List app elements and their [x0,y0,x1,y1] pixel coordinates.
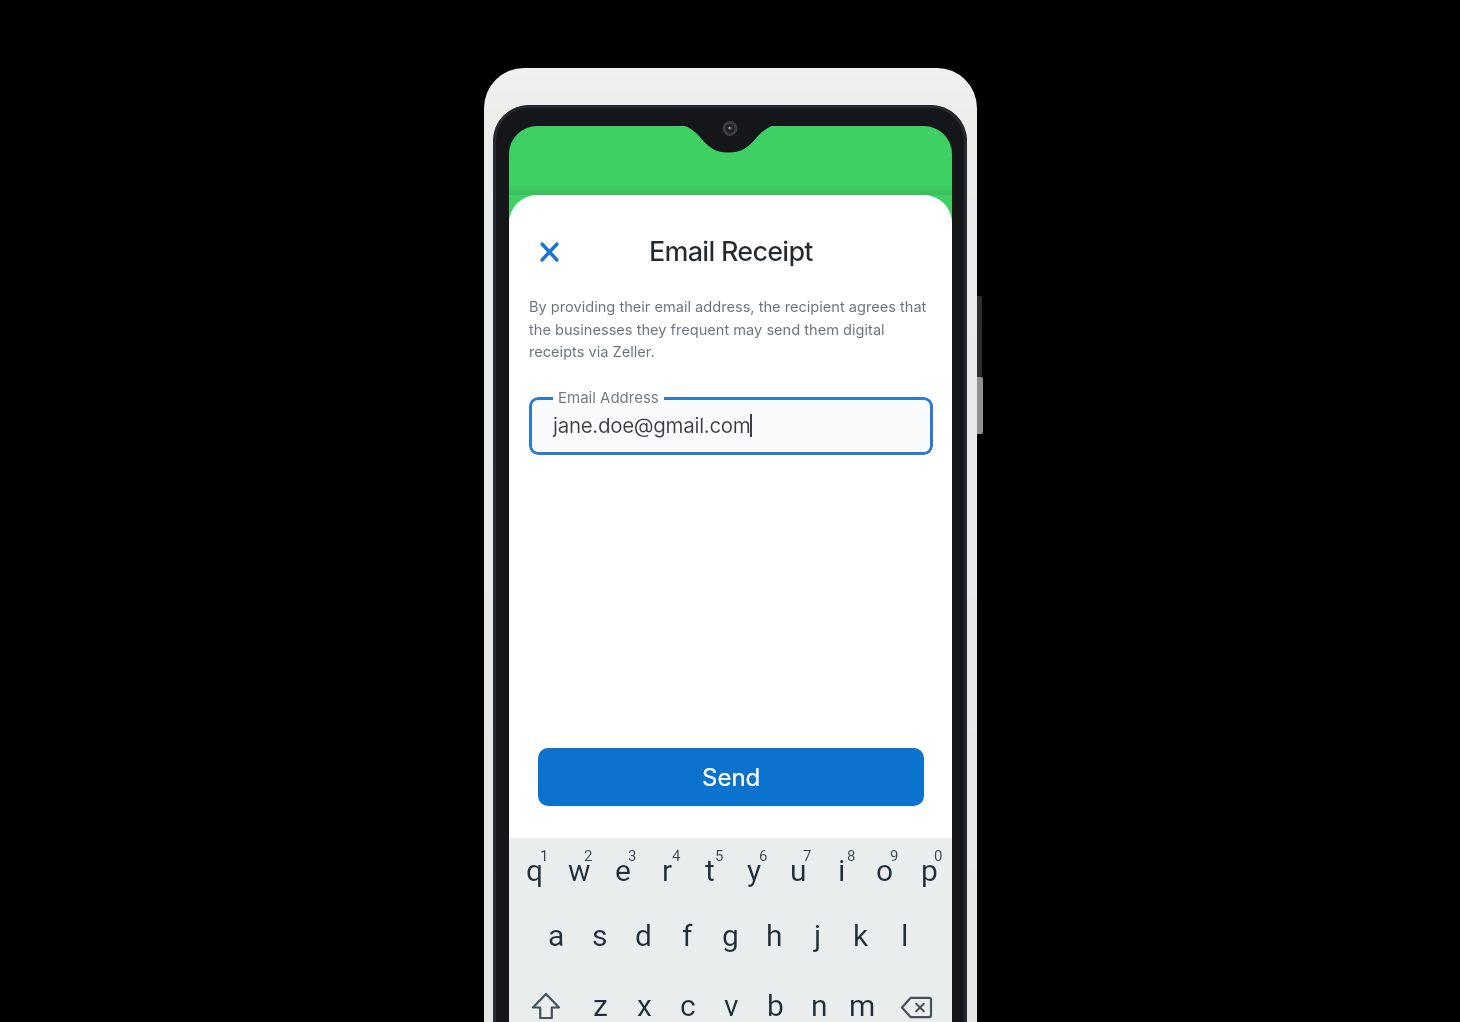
button[interactable]: g [708,913,752,957]
staticText: y [747,853,762,888]
staticText: 3 [628,847,637,865]
button[interactable] [527,229,572,274]
button[interactable]: a [534,913,578,957]
staticText: a [548,918,565,953]
button[interactable]: y [732,848,776,892]
staticText: q [526,853,544,888]
staticText: t [705,853,715,888]
button[interactable]: 6 [741,834,785,878]
button[interactable]: w [557,848,601,892]
staticText: x [637,988,652,1022]
button[interactable]: 3 [610,834,654,878]
staticText: l [901,918,909,953]
staticText: 4 [672,847,681,865]
button[interactable]: f [665,913,709,957]
staticText: 6 [759,847,768,865]
button[interactable]: z [578,983,622,1022]
button[interactable]: r [645,848,689,892]
staticText: m [849,988,876,1022]
button[interactable]: s [578,913,622,957]
staticText: b [767,988,784,1022]
staticText: jane.doe@gmail.com [553,413,751,438]
staticText: 7 [803,847,812,865]
button[interactable] [529,397,933,455]
button[interactable]: 2 [566,834,610,878]
staticText: i [838,853,846,888]
staticText: 1 [540,847,549,865]
button[interactable]: 4 [654,834,698,878]
staticText: n [811,988,828,1022]
button[interactable]: n [797,983,841,1022]
staticText: 0 [934,847,943,865]
button[interactable]: 9 [872,834,916,878]
button[interactable]: t [688,848,732,892]
staticText: Email Address [558,388,659,406]
button[interactable] [894,985,940,1022]
button[interactable]: 5 [697,834,741,878]
button[interactable]: o [863,848,907,892]
staticText: 8 [847,847,856,865]
staticText: p [921,853,938,888]
button[interactable]: Send [538,748,924,806]
staticText: 2 [584,847,593,865]
button[interactable]: 8 [829,834,873,878]
staticText: 5 [715,847,724,865]
staticText: d [635,918,652,953]
staticText: e [615,853,631,888]
staticText: Email Receipt [649,235,813,268]
staticText: s [592,918,608,953]
button[interactable]: k [839,913,883,957]
staticText: r [662,853,673,888]
staticText: k [853,918,869,953]
staticText: z [593,988,608,1022]
staticText: 9 [890,847,899,865]
staticText: u [790,853,807,888]
staticText: f [682,918,693,953]
button[interactable]: 1 [522,834,566,878]
staticText: j [814,918,822,953]
staticText: h [766,918,783,953]
button[interactable]: p [907,848,951,892]
staticText: v [724,988,739,1022]
staticText: g [722,918,739,953]
staticText: w [568,853,591,888]
button[interactable]: l [883,913,927,957]
button[interactable]: b [753,983,797,1022]
staticText: c [680,988,696,1022]
button[interactable] [523,985,568,1022]
button[interactable]: j [796,913,840,957]
button[interactable]: e [601,848,645,892]
button[interactable]: u [776,848,820,892]
staticText: Send [702,763,761,792]
button[interactable]: h [752,913,796,957]
staticText: By providing their email address, the re… [529,298,927,360]
button[interactable]: 7 [785,834,829,878]
button[interactable]: x [622,983,666,1022]
button[interactable]: c [666,983,710,1022]
button[interactable]: v [709,983,753,1022]
staticText: o [876,853,894,888]
button[interactable]: q [513,848,557,892]
button[interactable]: m [840,983,884,1022]
button[interactable]: d [621,913,665,957]
button[interactable]: 0 [916,834,952,878]
button[interactable]: i [820,848,864,892]
